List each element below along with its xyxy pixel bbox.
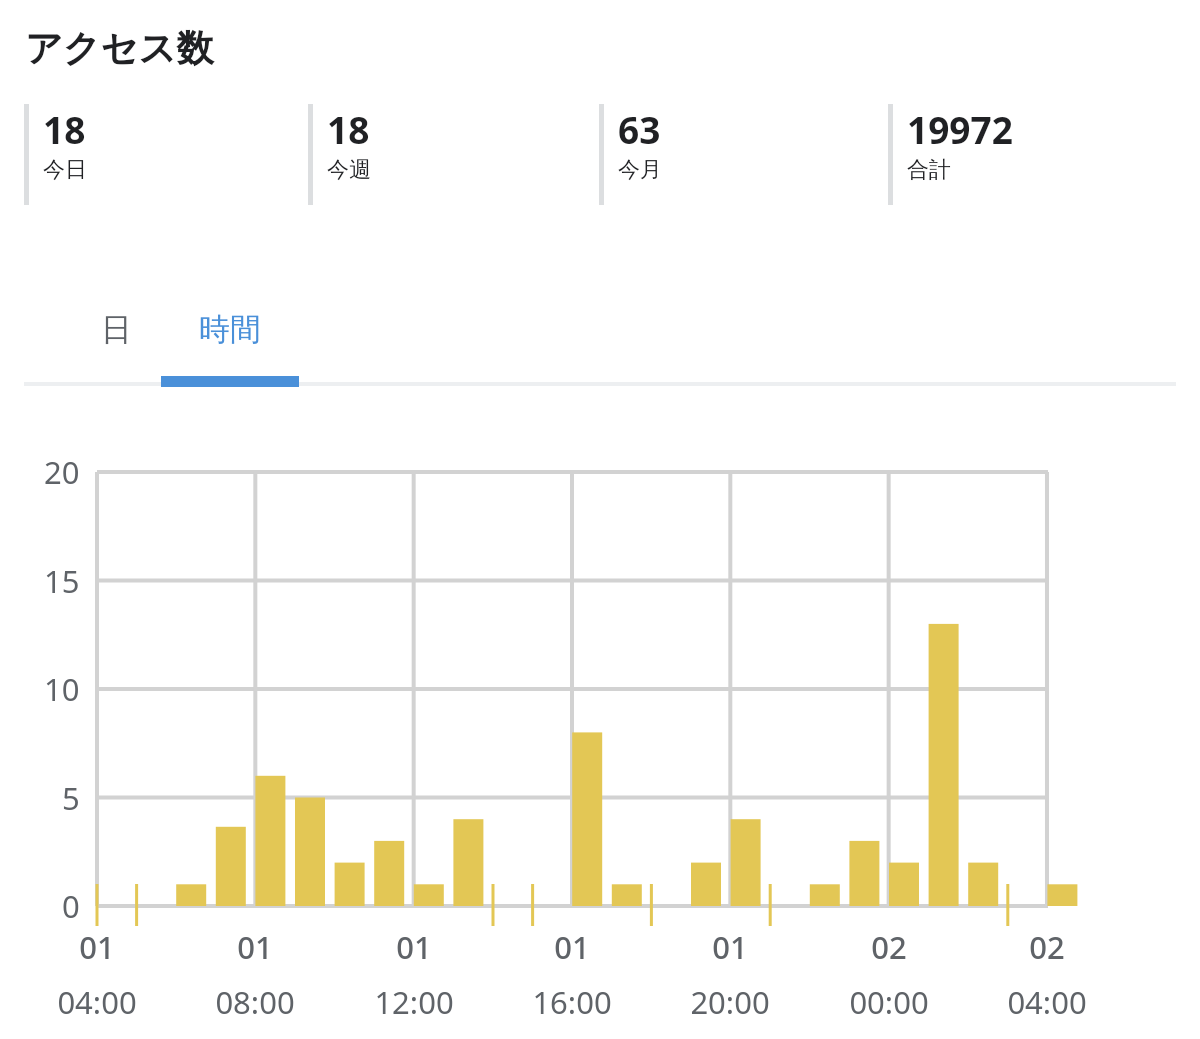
staticText: 00:00	[849, 981, 929, 1023]
staticText: 時間	[199, 310, 261, 349]
button[interactable]: 19972	[888, 104, 1118, 205]
staticText: 01	[554, 926, 590, 968]
staticText: 10	[44, 668, 80, 710]
staticText: 01	[79, 926, 115, 968]
staticText: 18	[327, 104, 370, 154]
button[interactable]: 時間	[161, 285, 299, 373]
staticText: 0	[62, 885, 80, 927]
staticText: 63	[618, 104, 661, 154]
staticText: 02	[1029, 926, 1065, 968]
staticText: 12:00	[374, 981, 454, 1023]
staticText: 04:00	[57, 981, 137, 1023]
button[interactable]: 18	[24, 104, 254, 205]
staticText: 日	[101, 310, 132, 349]
staticText: 合計	[907, 156, 951, 184]
staticText: 08:00	[215, 981, 295, 1023]
staticText: 20	[44, 451, 80, 493]
staticText: 今日	[43, 156, 87, 184]
staticText: 18	[43, 104, 86, 154]
staticText: 20:00	[690, 981, 770, 1023]
staticText: 16:00	[532, 981, 612, 1023]
staticText: 19972	[907, 104, 1013, 154]
staticText: 01	[237, 926, 273, 968]
button[interactable]: 63	[599, 104, 829, 205]
staticText: 04:00	[1007, 981, 1087, 1023]
staticText: 15	[44, 560, 80, 602]
staticText: 02	[871, 926, 907, 968]
staticText: アクセス数	[25, 25, 214, 72]
staticText: 01	[396, 926, 432, 968]
staticText: 5	[62, 777, 80, 819]
staticText: 今週	[327, 156, 371, 184]
button[interactable]: 18	[308, 104, 538, 205]
button[interactable]: 日	[70, 285, 162, 373]
staticText: 今月	[618, 156, 662, 184]
staticText: 01	[712, 926, 748, 968]
